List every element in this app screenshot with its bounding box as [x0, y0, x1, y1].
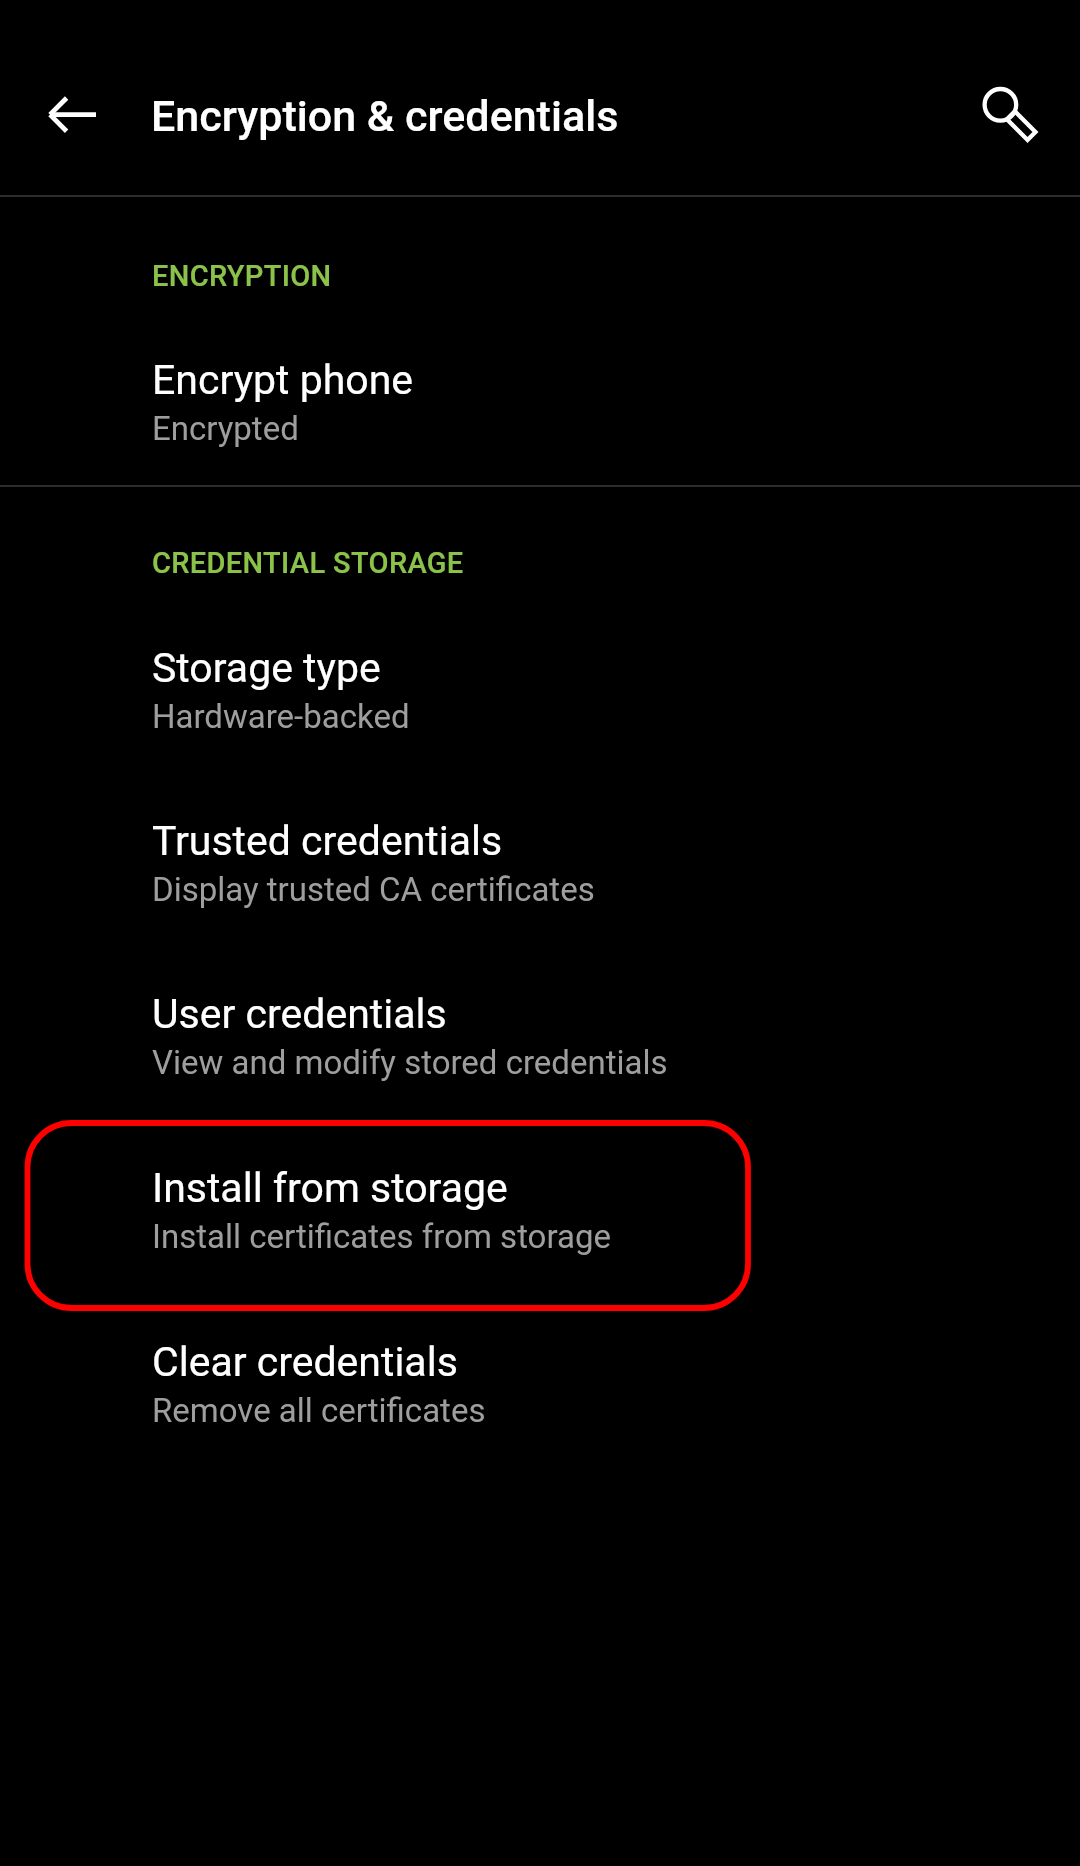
staticText: Storage type [152, 644, 381, 692]
button[interactable]: Clear credentials [0, 1295, 1080, 1455]
staticText: Encrypted [152, 409, 299, 448]
staticText: Encrypt phone [152, 356, 414, 404]
button[interactable]: Storage type [0, 600, 1080, 760]
button[interactable]: Install from storage [0, 1122, 1080, 1280]
staticText: User credentials [152, 990, 447, 1038]
button[interactable]: Navigate up [24, 66, 120, 162]
button[interactable]: Trusted credentials [0, 775, 1080, 933]
staticText: View and modify stored credentials [152, 1043, 668, 1082]
staticText: Encryption & credentials [151, 91, 619, 141]
staticText: ENCRYPTION [152, 259, 332, 293]
button[interactable]: Encrypt phone [0, 310, 1080, 470]
staticText: Hardware-backed [152, 697, 410, 736]
staticText: Install from storage [152, 1164, 508, 1212]
button[interactable]: Search [953, 57, 1049, 153]
staticText: Install certificates from storage [152, 1217, 611, 1256]
staticText: Remove all certificates [152, 1391, 486, 1430]
button[interactable]: User credentials [0, 948, 1080, 1106]
staticText: Display trusted CA certificates [152, 870, 595, 909]
staticText: Clear credentials [152, 1338, 458, 1386]
staticText: CREDENTIAL STORAGE [152, 546, 464, 580]
staticText: Trusted credentials [152, 817, 503, 865]
